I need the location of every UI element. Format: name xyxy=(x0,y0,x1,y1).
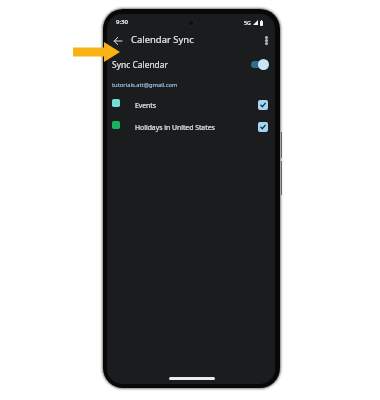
staticText: Holidays in United States xyxy=(135,123,215,132)
button[interactable]: Events xyxy=(108,95,275,111)
button[interactable]: Holidays in United States xyxy=(108,117,275,133)
button[interactable]: Toggle Events xyxy=(258,100,268,110)
button[interactable]: More options xyxy=(260,34,273,47)
staticText: Sync Calendar xyxy=(112,59,169,71)
staticText: tutorials.att@gmail.com xyxy=(112,81,178,89)
staticText: Calendar Sync xyxy=(131,33,194,46)
button[interactable]: Back xyxy=(111,34,125,48)
button[interactable]: Toggle Holidays in United States xyxy=(258,122,268,132)
staticText: Events xyxy=(135,101,157,110)
button[interactable]: Sync Calendar xyxy=(108,54,275,73)
staticText: 5G xyxy=(244,19,251,26)
staticText: 9:30 xyxy=(116,18,128,26)
